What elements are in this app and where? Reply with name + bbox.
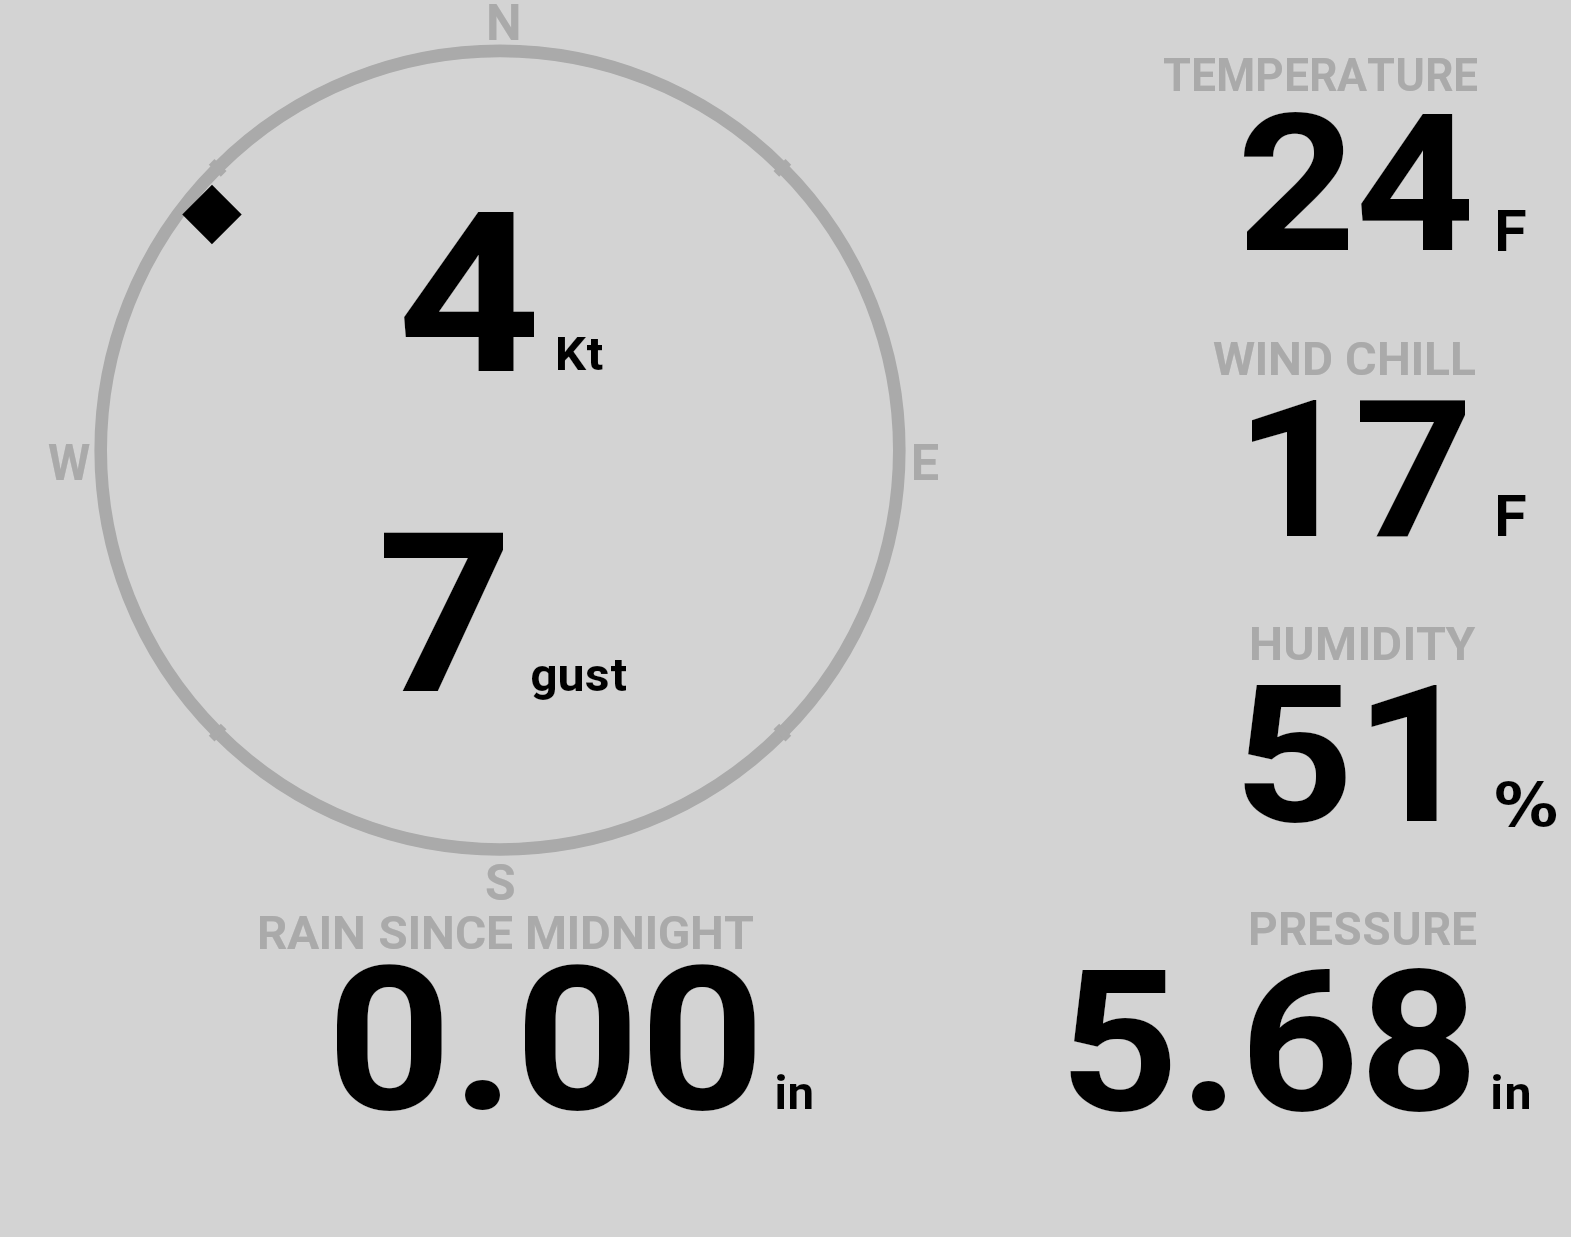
button[interactable]: Pressure 5.68 in <box>1037 891 1555 1126</box>
button[interactable]: Rain since midnight 0.00 in <box>220 891 833 1126</box>
button[interactable]: Temperature 24 F <box>1100 25 1556 260</box>
button[interactable]: Wind chill 17 F <box>1100 309 1556 544</box>
button[interactable]: Humidity 51 % <box>1100 594 1556 829</box>
button[interactable]: Wind 4 knots, gusting 7, from the north … <box>47 0 927 903</box>
